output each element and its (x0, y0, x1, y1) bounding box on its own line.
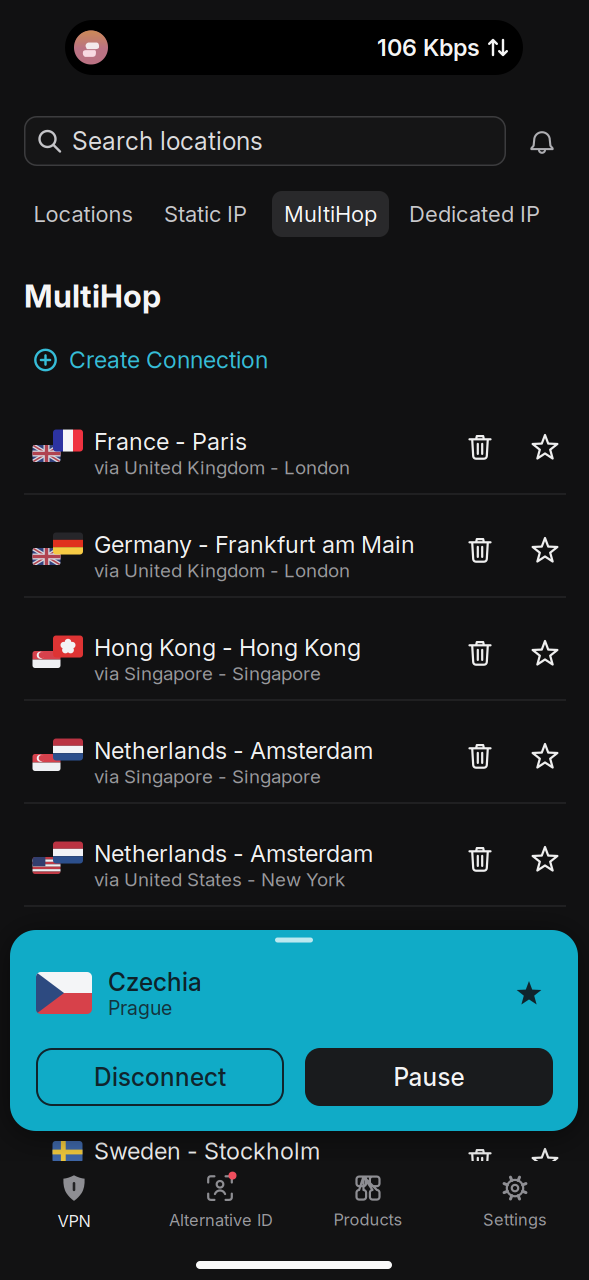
button[interactable]: Products (294, 1167, 441, 1237)
button[interactable]: Favorite (516, 980, 542, 1006)
staticText: via Singapore - Singapore (94, 765, 321, 788)
button[interactable]: Delete (467, 845, 493, 872)
staticText: France - Paris (94, 427, 247, 456)
button[interactable]: Favorite (531, 742, 559, 770)
button[interactable]: Favorite (531, 845, 559, 873)
staticText: Hong Kong - Hong Kong (94, 633, 361, 662)
staticText: MultiHop (284, 201, 377, 227)
button[interactable]: Delete (467, 433, 493, 460)
staticText: VPN (57, 1211, 90, 1231)
button[interactable]: Delete (467, 639, 493, 666)
staticText: via United Kingdom - London (94, 456, 350, 479)
staticText: Czechia (108, 967, 202, 997)
button[interactable]: Hong Kong - Hong Kong (20, 604, 440, 696)
staticText: Locations (33, 201, 132, 227)
button[interactable]: Netherlands - Amsterdam (20, 810, 440, 902)
staticText: Germany - Frankfurt am Main (94, 530, 415, 559)
staticText: Disconnect (94, 1062, 226, 1092)
staticText: Dedicated IP (409, 201, 540, 227)
button[interactable]: Alternative ID (147, 1167, 294, 1237)
button[interactable]: Favorite (531, 433, 559, 461)
staticText: Prague (108, 996, 172, 1020)
button[interactable]: Favorite (531, 536, 559, 564)
button[interactable]: Static IP (145, 191, 265, 237)
button[interactable]: France - Paris (20, 398, 440, 490)
staticText: via Singapore - Singapore (94, 662, 321, 685)
staticText: Create Connection (69, 346, 268, 374)
button[interactable]: Dedicated IP (399, 191, 549, 237)
button[interactable]: Search locations (24, 116, 506, 166)
button[interactable]: Notifications (528, 127, 556, 154)
staticText: Static IP (164, 201, 247, 227)
button[interactable]: MultiHop (272, 191, 389, 237)
button[interactable]: Delete (467, 536, 493, 563)
staticText: Search locations (72, 126, 263, 156)
staticText: Netherlands - Amsterdam (94, 839, 373, 868)
staticText: via United Kingdom - London (94, 559, 350, 582)
staticText: Pause (393, 1062, 464, 1092)
button[interactable]: Netherlands - Amsterdam (20, 707, 440, 799)
button[interactable]: Settings (441, 1167, 588, 1237)
staticText: MultiHop (24, 277, 161, 315)
staticText: Settings (483, 1210, 547, 1229)
button[interactable]: Connection speed (377, 33, 508, 62)
staticText: Sweden - Stockholm (94, 1137, 320, 1165)
button[interactable]: Create Connection (34, 346, 268, 374)
staticText: Products (333, 1210, 402, 1229)
button[interactable]: Pause (305, 1048, 553, 1106)
button[interactable]: VPN (0, 1167, 147, 1237)
button[interactable]: Home (196, 1261, 392, 1269)
staticText: Netherlands - Amsterdam (94, 736, 373, 765)
button[interactable]: Favorite (531, 639, 559, 667)
staticText: via United States - New York (94, 868, 345, 891)
staticText: Alternative ID (169, 1210, 273, 1230)
button[interactable]: Delete (467, 742, 493, 769)
staticText: 106 Kbps (377, 33, 480, 62)
button[interactable]: Germany - Frankfurt am Main (20, 501, 440, 593)
button[interactable]: Disconnect (36, 1048, 284, 1106)
button[interactable]: Locations (13, 191, 153, 237)
